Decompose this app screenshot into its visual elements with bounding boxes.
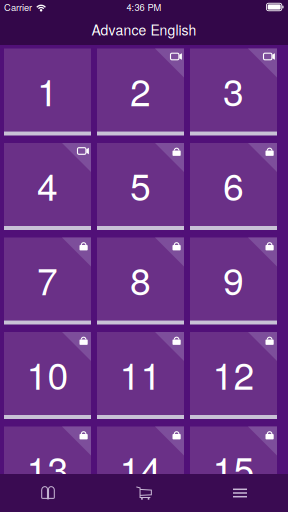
staticText: 5 [130,158,151,211]
button[interactable]: Store [96,474,192,512]
staticText: Advance English [91,19,196,39]
button[interactable]: Lessons [0,474,96,512]
button[interactable]: 5 [97,143,184,230]
staticText: 4:36 PM [126,0,161,14]
staticText: 2 [130,63,151,117]
button[interactable]: 1 [4,48,91,135]
button[interactable]: 10 [4,332,91,419]
staticText: 14 [119,441,161,495]
staticText: 4 [37,158,58,211]
button[interactable]: Menu [192,474,288,512]
button[interactable]: 13 [4,426,91,512]
button[interactable]: 7 [4,237,91,324]
staticText: 8 [130,252,151,306]
staticText: 6 [223,158,244,211]
staticText: 11 [119,347,161,400]
staticText: 7 [37,252,58,306]
staticText: 10 [26,347,68,400]
button[interactable]: 12 [190,332,277,419]
button[interactable]: 9 [190,237,277,324]
staticText: 9 [223,252,244,306]
staticText: Carrier [4,0,32,14]
button[interactable]: 4 [4,143,91,230]
button[interactable]: 11 [97,332,184,419]
button[interactable]: 15 [190,426,277,512]
staticText: 3 [223,63,244,117]
button[interactable]: 6 [190,143,277,230]
staticText: 13 [26,441,68,495]
button[interactable]: 2 [97,48,184,135]
staticText: 1 [37,63,58,117]
button[interactable]: 14 [97,426,184,512]
button[interactable]: 8 [97,237,184,324]
button[interactable]: 3 [190,48,277,135]
staticText: 12 [212,347,254,400]
staticText: 15 [212,441,254,495]
